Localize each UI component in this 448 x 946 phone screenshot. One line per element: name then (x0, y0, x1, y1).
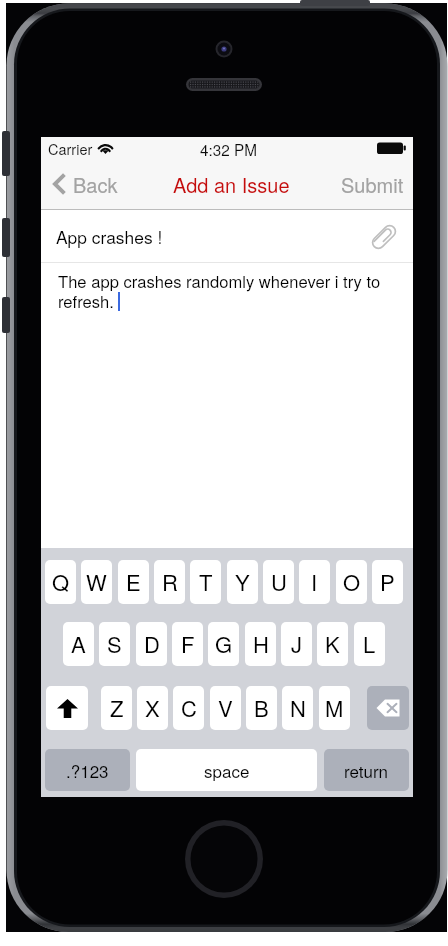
button[interactable]: B (246, 686, 277, 730)
button[interactable]: H (245, 622, 276, 666)
button[interactable]: Backspace (367, 686, 409, 730)
button[interactable]: Back (45, 163, 128, 204)
button[interactable]: D (136, 622, 167, 666)
staticText: S (107, 628, 122, 660)
staticText: F (181, 628, 195, 660)
button[interactable]: T (190, 560, 221, 604)
button[interactable]: Q (45, 560, 76, 604)
button[interactable]: J (281, 622, 312, 666)
button[interactable]: V (210, 686, 241, 730)
staticText: Carrier (48, 138, 93, 158)
button[interactable]: return (324, 749, 409, 791)
staticText: N (290, 692, 306, 724)
staticText: A (71, 628, 86, 660)
button[interactable]: L (354, 622, 385, 666)
button[interactable]: E (118, 560, 149, 604)
staticText: Q (52, 566, 70, 598)
button[interactable]: S (99, 622, 130, 666)
staticText: Z (110, 692, 124, 724)
staticText: 4:32 PM (200, 138, 257, 158)
button[interactable]: G (208, 622, 239, 666)
staticText: U (271, 566, 287, 598)
button[interactable]: P (372, 560, 403, 604)
button[interactable]: Z (101, 686, 132, 730)
staticText: O (343, 566, 361, 598)
staticText: Submit (341, 170, 404, 199)
staticText: M (325, 692, 344, 724)
staticText: V (218, 692, 233, 724)
staticText: I (311, 566, 318, 598)
button[interactable]: K (317, 622, 348, 666)
staticText: return (344, 758, 389, 782)
button[interactable]: Shift (46, 686, 88, 730)
staticText: G (215, 628, 233, 660)
staticText: H (253, 628, 269, 660)
button[interactable]: U (263, 560, 294, 604)
button[interactable]: M (319, 686, 350, 730)
button[interactable]: R (154, 560, 185, 604)
button[interactable]: F (172, 622, 203, 666)
staticText: Add an Issue (173, 170, 290, 199)
staticText: P (380, 566, 395, 598)
button[interactable]: Submit (329, 163, 413, 204)
button[interactable]: N (282, 686, 313, 730)
staticText: Y (235, 566, 250, 598)
staticText: C (181, 692, 197, 724)
staticText: refresh. (58, 289, 119, 313)
button[interactable]: X (137, 686, 168, 730)
staticText: The app crashes randomly whenever i try … (58, 269, 381, 293)
staticText: B (254, 692, 269, 724)
staticText: E (126, 566, 141, 598)
staticText: L (363, 628, 376, 660)
button[interactable]: A (63, 622, 94, 666)
button[interactable]: W (81, 560, 112, 604)
button[interactable]: Attach file (369, 222, 413, 252)
staticText: D (144, 628, 160, 660)
staticText: Back (73, 170, 118, 199)
button[interactable]: C (173, 686, 204, 730)
button[interactable]: I (299, 560, 330, 604)
staticText: App crashes ! (56, 224, 163, 249)
staticText: space (204, 758, 250, 782)
button[interactable]: O (336, 560, 367, 604)
button[interactable]: space (136, 749, 317, 791)
staticText: T (199, 566, 213, 598)
staticText: R (162, 566, 178, 598)
staticText: J (291, 628, 303, 660)
button[interactable]: .?123 (45, 749, 130, 791)
staticText: K (325, 628, 340, 660)
staticText: .?123 (66, 758, 109, 782)
staticText: X (145, 692, 160, 724)
button[interactable]: Y (227, 560, 258, 604)
staticText: W (86, 566, 107, 598)
